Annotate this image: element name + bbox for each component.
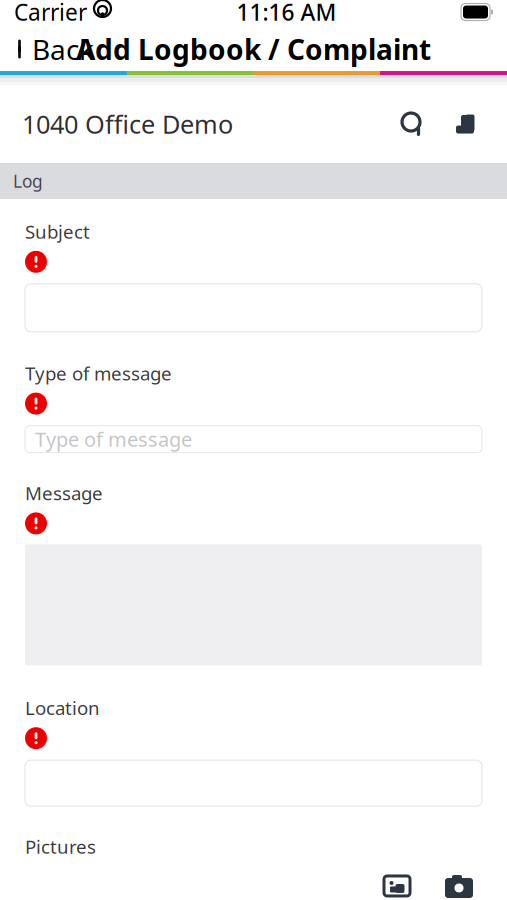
staticText: Message [25, 481, 103, 505]
staticText: Location [25, 695, 100, 720]
button[interactable]: Take photo [436, 869, 482, 900]
button[interactable]: Navigate [439, 98, 491, 150]
staticText: Log [13, 169, 43, 192]
button[interactable] [25, 760, 482, 806]
button[interactable]: Search [387, 98, 439, 150]
button[interactable] [25, 284, 482, 332]
staticText: Back [32, 30, 94, 68]
staticText: Pictures [25, 834, 96, 859]
button[interactable]: Type of message [25, 426, 482, 453]
staticText: Subject [25, 219, 90, 244]
staticText: Add Logbook / Complaint [76, 30, 431, 68]
button[interactable]: Back [0, 27, 108, 71]
staticText: Carrier [14, 0, 87, 27]
staticText: 11:16 AM [236, 0, 336, 27]
staticText: Type of message [25, 361, 172, 386]
staticText: 1040 Office Demo [22, 107, 233, 141]
button[interactable]: Choose photo from library [374, 869, 420, 900]
staticText: Type of message [35, 426, 192, 452]
